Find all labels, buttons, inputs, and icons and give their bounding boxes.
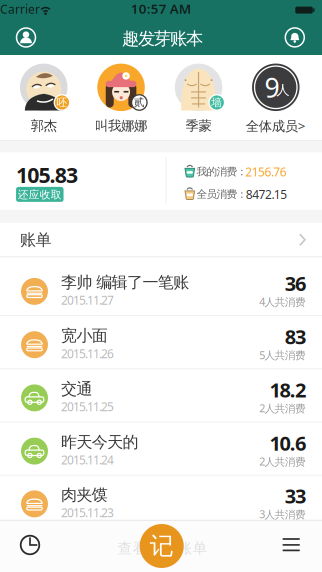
staticText: 还应收取	[18, 188, 62, 201]
staticText: 叫我娜娜	[95, 117, 147, 134]
staticText: 36	[285, 270, 306, 296]
staticText: 105.83	[16, 160, 78, 189]
staticText: 2015.11.27	[61, 292, 114, 308]
button[interactable]	[281, 536, 301, 554]
staticText: 交通	[61, 379, 92, 399]
staticText: 昨天今天的	[61, 432, 139, 452]
staticText: 肉夹馍	[61, 485, 108, 505]
staticText: 贰	[134, 96, 145, 109]
staticText: 2人共消费	[259, 454, 306, 468]
staticText: 人	[276, 82, 289, 98]
staticText: 5人共消费	[259, 348, 306, 362]
staticText: 18.2	[269, 376, 306, 403]
staticText: 墙	[211, 96, 222, 109]
button[interactable]: 呸	[11, 55, 77, 131]
button[interactable]: 昨天今天的	[0, 422, 322, 475]
staticText: 2156.76	[245, 164, 287, 180]
staticText: 4人共消费	[259, 295, 306, 309]
staticText: 全体成员>	[246, 117, 306, 134]
button[interactable]: 账单	[0, 223, 322, 257]
button[interactable]	[13, 528, 47, 562]
button[interactable]: 李帅 编辑了一笔账	[0, 262, 322, 315]
staticText: 账单	[20, 230, 51, 250]
staticText: 2015.11.24	[61, 452, 114, 468]
staticText: 记	[150, 531, 174, 561]
button[interactable]: 宽小面	[0, 316, 322, 369]
staticText: 9	[264, 70, 279, 105]
staticText: 我的消费：	[196, 165, 247, 178]
staticText: 宽小面	[61, 326, 108, 346]
button[interactable]: 交通	[0, 369, 322, 422]
button[interactable]	[11, 22, 41, 52]
staticText: 李帅 编辑了一笔账	[61, 273, 189, 292]
staticText: 趣发芽账本	[122, 28, 203, 49]
staticText: 10:57 AM	[131, 0, 191, 17]
staticText: 郭杰	[31, 117, 57, 134]
staticText: 2015.11.26	[61, 345, 114, 361]
staticText: 10.6	[269, 430, 306, 456]
button[interactable]: 肉夹馍	[0, 475, 322, 528]
staticText: 2015.11.25	[61, 399, 114, 415]
staticText: 2人共消费	[259, 401, 306, 415]
button[interactable]: 贰	[88, 55, 154, 131]
button[interactable]: 记	[140, 524, 184, 568]
button[interactable]: 9	[243, 55, 309, 131]
staticText: 季蒙	[185, 117, 211, 134]
button[interactable]	[280, 22, 310, 52]
staticText: Carrier	[0, 1, 40, 17]
staticText: 全员消费：	[196, 188, 247, 201]
staticText: 8472.15	[246, 186, 287, 202]
staticText: 呸	[56, 96, 67, 109]
staticText: 3人共消费	[259, 507, 306, 521]
button[interactable]: 墙	[165, 55, 231, 131]
staticText: 83	[285, 323, 306, 350]
staticText: 2015.11.23	[61, 505, 114, 521]
staticText: 查看全部账单	[117, 539, 207, 557]
staticText: 33	[285, 482, 306, 509]
